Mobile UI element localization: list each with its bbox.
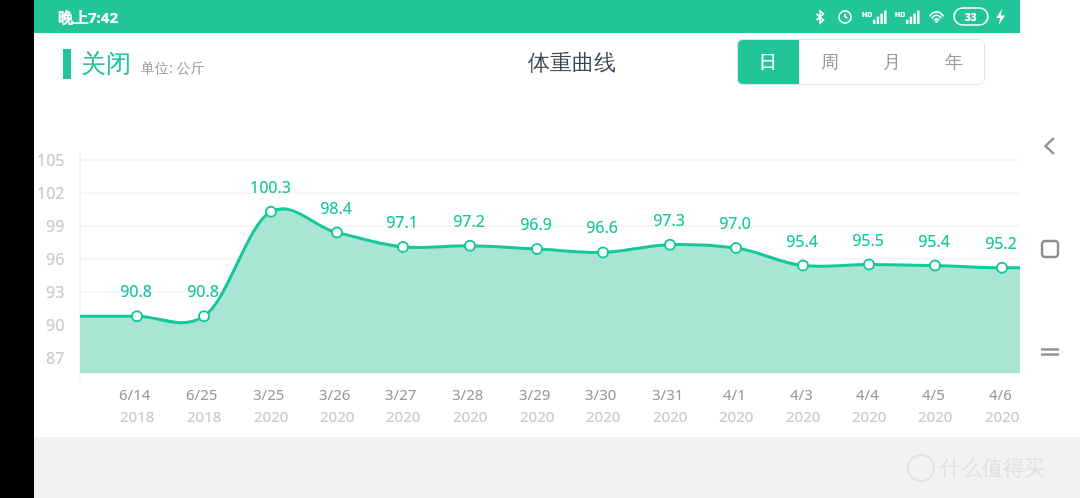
staticText: 2020 [719, 406, 754, 426]
staticText: 关闭 [81, 48, 131, 79]
staticText: 93 [46, 281, 65, 303]
staticText: 2020 [852, 406, 887, 426]
staticText: 96 [46, 248, 65, 270]
staticText: 6/14 [119, 384, 151, 404]
staticText: 4/3 [790, 384, 813, 404]
staticText: 日 [759, 51, 777, 74]
staticText: 月 [883, 51, 901, 74]
staticText: 97.3 [653, 209, 685, 231]
staticText: 3/26 [319, 384, 351, 404]
button[interactable]: 月 [861, 39, 923, 85]
staticText: 3/28 [452, 384, 484, 404]
staticText: 2020 [386, 406, 421, 426]
button[interactable]: 关闭 [63, 48, 205, 79]
button[interactable]: Menu [1034, 336, 1066, 368]
staticText: 2018 [187, 406, 222, 426]
staticText: 6/25 [186, 384, 218, 404]
staticText: 4/6 [989, 384, 1012, 404]
staticText: 97.0 [719, 212, 751, 234]
staticText: 2018 [120, 406, 155, 426]
staticText: 33 [965, 10, 977, 24]
staticText: 3/29 [519, 384, 551, 404]
staticText: 90.8 [187, 280, 219, 302]
staticText: 97.2 [453, 210, 485, 232]
staticText: 2020 [918, 406, 953, 426]
staticText: 4/4 [856, 384, 879, 404]
button[interactable]: Home [1034, 233, 1066, 265]
staticText: 2020 [985, 406, 1020, 426]
staticText: HD [862, 10, 873, 20]
staticText: 2020 [653, 406, 688, 426]
staticText: 2020 [453, 406, 488, 426]
staticText: 什么值得买 [940, 455, 1045, 481]
staticText: 95.4 [918, 230, 950, 252]
staticText: 95.2 [985, 232, 1017, 254]
staticText: 95.4 [786, 230, 818, 252]
staticText: 单位: 公斤 [141, 58, 205, 77]
staticText: 4/1 [723, 384, 746, 404]
staticText: 96.6 [586, 216, 618, 238]
staticText: 99 [46, 215, 65, 237]
staticText: 体重曲线 [528, 49, 616, 77]
staticText: 102 [37, 182, 65, 204]
staticText: 晚上7:42 [58, 7, 118, 27]
button[interactable]: 周 [799, 39, 861, 85]
staticText: 98.4 [320, 197, 352, 219]
button[interactable]: Back [1034, 130, 1066, 162]
staticText: 90 [46, 314, 65, 336]
staticText: 年 [945, 51, 963, 74]
button[interactable]: 日 [737, 39, 799, 85]
staticText: 4/5 [922, 384, 945, 404]
staticText: 2020 [586, 406, 621, 426]
staticText: 105 [37, 149, 65, 171]
staticText: 97.1 [386, 211, 418, 233]
staticText: 2020 [520, 406, 555, 426]
staticText: 95.5 [852, 229, 884, 251]
staticText: 96.9 [520, 213, 552, 235]
staticText: 2020 [320, 406, 355, 426]
staticText: 2020 [786, 406, 821, 426]
staticText: 90.8 [120, 280, 152, 302]
button[interactable]: 年 [923, 39, 985, 85]
staticText: 3/25 [253, 384, 285, 404]
staticText: 3/27 [385, 384, 417, 404]
staticText: 87 [46, 347, 65, 369]
staticText: 2020 [254, 406, 289, 426]
staticText: 100.3 [250, 176, 291, 198]
staticText: 周 [821, 51, 839, 74]
staticText: HD [895, 10, 906, 20]
staticText: 3/31 [652, 384, 684, 404]
staticText: 3/30 [585, 384, 617, 404]
